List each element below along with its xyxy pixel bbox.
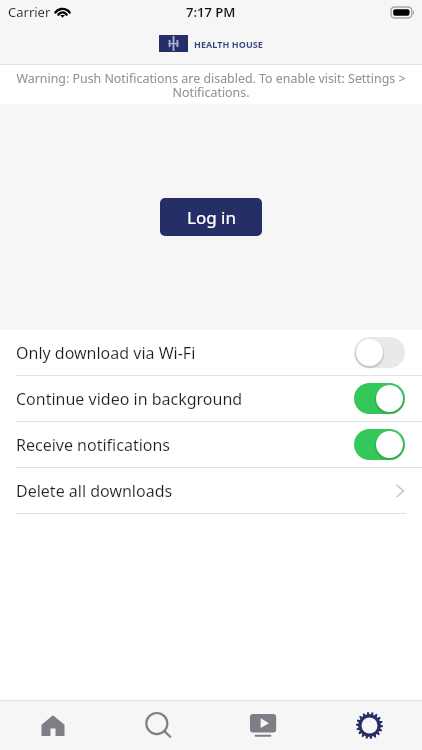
staticText: 7:17 PM — [186, 3, 236, 21]
staticText: Continue video in background — [16, 388, 243, 410]
button[interactable]: Home — [0, 700, 105, 750]
button[interactable]: Settings — [316, 700, 422, 750]
button[interactable]: Receive notifications — [0, 422, 422, 467]
staticText: Carrier — [8, 3, 51, 21]
staticText: Log in — [187, 206, 236, 229]
button[interactable]: Search — [105, 700, 210, 750]
button[interactable]: Only download via Wi-Fi — [0, 330, 422, 375]
staticText: Only download via Wi-Fi — [16, 342, 196, 364]
staticText: Receive notifications — [16, 434, 171, 456]
staticText: HEALTH HOUSE — [194, 38, 263, 50]
button[interactable]: Continue video in background — [0, 376, 422, 421]
staticText: Warning: Push Notifications are disabled… — [8, 70, 414, 101]
staticText: Delete all downloads — [16, 480, 173, 502]
button[interactable]: Videos — [210, 700, 316, 750]
button[interactable]: Log in — [160, 198, 262, 236]
button[interactable]: Delete all downloads — [0, 468, 422, 513]
